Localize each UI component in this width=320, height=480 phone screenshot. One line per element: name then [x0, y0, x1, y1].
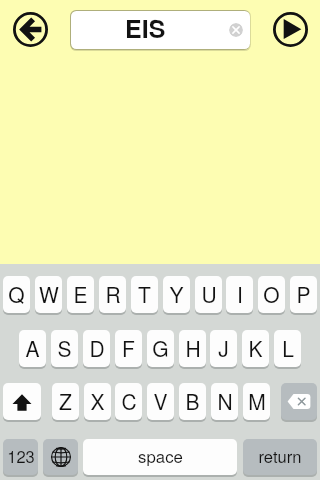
staticText: space	[138, 444, 183, 468]
staticText: J	[218, 333, 229, 363]
button[interactable]: A	[19, 330, 46, 367]
staticText: L	[282, 333, 294, 363]
staticText: M	[248, 386, 266, 416]
button[interactable]: Z	[52, 383, 79, 420]
button[interactable]: Y	[163, 276, 190, 313]
button[interactable]: E	[67, 276, 94, 313]
staticText: N	[217, 386, 233, 416]
staticText: Y	[169, 279, 184, 309]
staticText: EIS	[125, 11, 166, 46]
button[interactable]: S	[51, 330, 78, 367]
staticText: B	[185, 386, 200, 416]
button[interactable]: R	[99, 276, 126, 313]
staticText: U	[201, 279, 217, 309]
staticText: H	[185, 333, 201, 363]
button[interactable]: V	[147, 383, 174, 420]
button[interactable]: Q	[3, 276, 30, 313]
button[interactable]: F	[115, 330, 142, 367]
button[interactable]: L	[274, 330, 301, 367]
button[interactable]: X	[84, 383, 111, 420]
staticText: T	[138, 279, 151, 309]
staticText: O	[263, 279, 280, 309]
button[interactable]: N	[211, 383, 238, 420]
staticText: V	[153, 386, 168, 416]
button[interactable]: M	[243, 383, 270, 420]
button[interactable]: J	[210, 330, 237, 367]
staticText: W	[39, 279, 59, 309]
staticText: R	[105, 279, 121, 309]
button[interactable]: Clear text	[229, 23, 243, 37]
button[interactable]: U	[195, 276, 222, 313]
staticText: D	[89, 333, 105, 363]
staticText: A	[25, 333, 40, 363]
staticText: X	[90, 386, 105, 416]
button[interactable]: Shift	[3, 383, 41, 420]
button[interactable]: I	[226, 276, 253, 313]
staticText: 123	[7, 444, 35, 468]
button[interactable]: Play	[272, 11, 309, 48]
staticText: Q	[8, 279, 25, 309]
staticText: I	[237, 279, 243, 309]
button[interactable]: W	[35, 276, 62, 313]
button[interactable]: H	[179, 330, 206, 367]
button[interactable]: T	[131, 276, 158, 313]
staticText: return	[258, 444, 302, 468]
button[interactable]: P	[290, 276, 317, 313]
staticText: G	[152, 333, 169, 363]
staticText: E	[73, 279, 88, 309]
button[interactable]: D	[83, 330, 110, 367]
staticText: S	[57, 333, 72, 363]
button[interactable]: Backspace	[281, 383, 317, 420]
button[interactable]: Change keyboard	[43, 439, 78, 475]
button[interactable]: Back	[12, 11, 49, 48]
staticText: P	[296, 279, 311, 309]
staticText: K	[248, 333, 263, 363]
staticText: Z	[59, 386, 72, 416]
button[interactable]: B	[179, 383, 206, 420]
staticText: C	[121, 386, 137, 416]
button[interactable]: EIS	[71, 11, 250, 49]
button[interactable]: return	[243, 439, 317, 475]
button[interactable]: G	[147, 330, 174, 367]
button[interactable]: space	[83, 439, 237, 475]
staticText: F	[122, 333, 135, 363]
button[interactable]: K	[242, 330, 269, 367]
button[interactable]: C	[115, 383, 142, 420]
button[interactable]: O	[258, 276, 285, 313]
button[interactable]: 123	[3, 439, 38, 475]
